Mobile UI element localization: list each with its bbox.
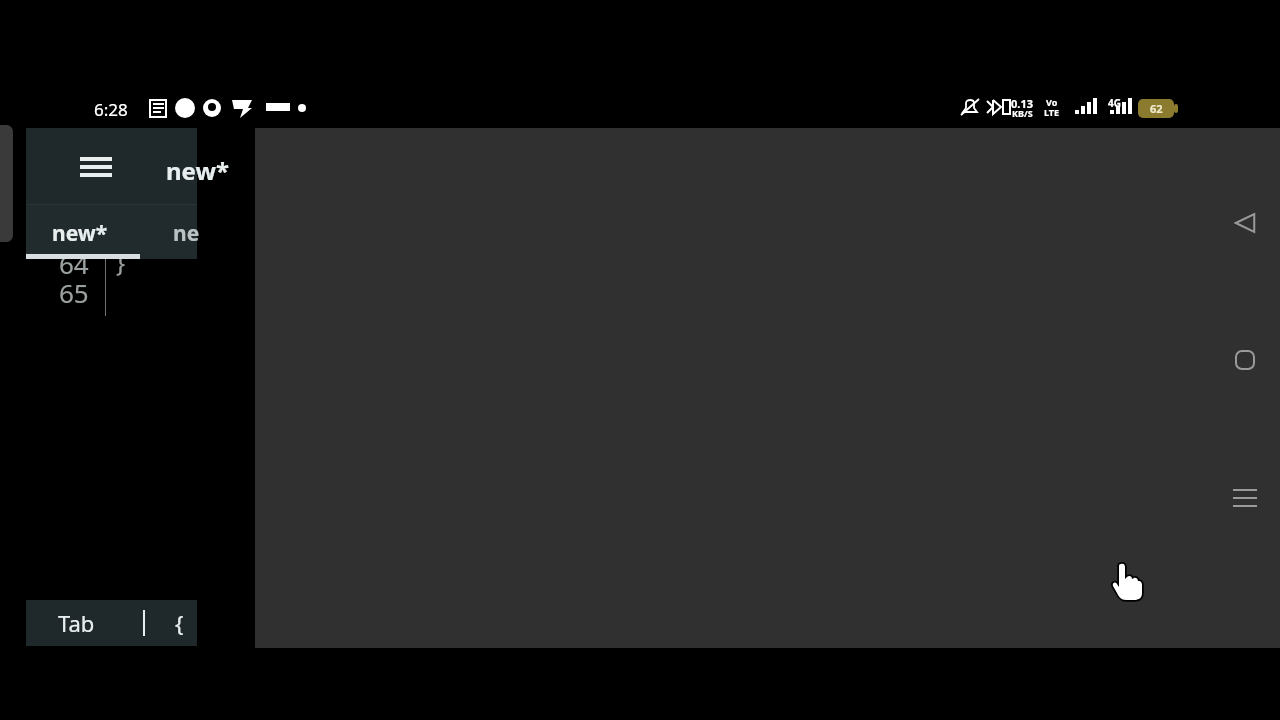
staticText: { [175,608,184,638]
staticText: LTE [1044,106,1060,118]
button[interactable]: Home [1216,331,1274,389]
button[interactable]: { [162,600,197,646]
button[interactable]: Back [1216,194,1274,252]
staticText: 6:28 [94,98,128,121]
staticText: 64 [59,246,89,281]
staticText: KB/S [1012,107,1033,119]
button[interactable]: new* [26,205,140,259]
staticText: new* [166,154,229,187]
staticText: 0.13 [1011,96,1033,111]
staticText: ne [173,219,200,248]
staticText: } [116,246,126,279]
staticText: 4G [1108,96,1121,110]
staticText: new* [52,219,108,248]
button[interactable]: Tab [26,600,126,646]
button[interactable]: Menu [70,146,122,188]
staticText: Vo [1046,96,1058,108]
staticText: 62 [1150,101,1163,116]
button[interactable]: ne [140,205,197,259]
button[interactable] [126,600,162,646]
staticText: 65 [59,275,89,310]
button[interactable]: Recent apps [1216,469,1274,527]
staticText: Tab [58,608,95,638]
